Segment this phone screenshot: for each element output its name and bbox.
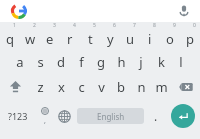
button[interactable]: 3 xyxy=(40,23,60,49)
staticText: e xyxy=(46,30,54,48)
button[interactable]: 4 xyxy=(60,23,80,49)
button[interactable]: k xyxy=(151,49,171,74)
staticText: l xyxy=(179,53,183,71)
staticText: q xyxy=(6,30,14,48)
staticText: 4 xyxy=(73,22,76,29)
staticText: r xyxy=(67,30,73,48)
staticText: g xyxy=(97,53,105,71)
staticText: m xyxy=(155,78,168,96)
button[interactable]: n xyxy=(131,74,151,99)
staticText: x xyxy=(58,78,65,96)
staticText: 6 xyxy=(113,22,116,29)
staticText: w xyxy=(25,30,36,48)
button[interactable]: a xyxy=(9,49,30,74)
staticText: 1 xyxy=(13,22,16,29)
staticText: c xyxy=(78,78,85,96)
staticText: 8 xyxy=(153,22,156,29)
button[interactable]: g xyxy=(91,49,111,74)
staticText: p xyxy=(186,30,194,48)
staticText: 5 xyxy=(93,22,96,29)
button[interactable]: 1 xyxy=(0,23,20,49)
staticText: 7 xyxy=(133,22,136,29)
staticText: a xyxy=(16,53,24,71)
button[interactable]: Backspace xyxy=(171,74,200,99)
button[interactable]: 5 xyxy=(80,23,100,49)
button[interactable]: 6 xyxy=(100,23,120,49)
button[interactable]: Voice input xyxy=(175,2,193,20)
button[interactable]: d xyxy=(51,49,71,74)
staticText: y xyxy=(107,30,114,48)
staticText: z xyxy=(37,78,44,96)
button[interactable]: English xyxy=(77,108,144,124)
button[interactable]: v xyxy=(91,74,111,99)
button[interactable]: b xyxy=(111,74,131,99)
button[interactable]: . xyxy=(146,99,166,133)
button[interactable]: Change language xyxy=(53,99,75,133)
staticText: j xyxy=(139,53,143,71)
staticText: o xyxy=(166,30,174,48)
staticText: n xyxy=(137,78,146,96)
button[interactable]: 0 xyxy=(180,23,200,49)
button[interactable]: m xyxy=(151,74,171,99)
button[interactable]: ?123 xyxy=(0,99,36,133)
staticText: , xyxy=(44,116,46,126)
button[interactable]: Enter xyxy=(171,104,195,128)
staticText: u xyxy=(126,30,135,48)
staticText: English xyxy=(97,111,125,122)
staticText: f xyxy=(79,53,84,71)
staticText: s xyxy=(37,53,44,71)
staticText: b xyxy=(117,78,125,96)
button[interactable]: Shift xyxy=(0,74,30,99)
staticText: ?123 xyxy=(8,110,28,122)
button[interactable]: l xyxy=(171,49,191,74)
staticText: . xyxy=(154,108,158,124)
button[interactable]: Emoji xyxy=(36,99,53,133)
button[interactable]: s xyxy=(30,49,51,74)
button[interactable]: 8 xyxy=(140,23,160,49)
button[interactable]: h xyxy=(111,49,131,74)
button[interactable]: c xyxy=(71,74,91,99)
staticText: t xyxy=(88,30,93,48)
staticText: v xyxy=(98,78,105,96)
staticText: k xyxy=(158,53,165,71)
button[interactable]: Google search xyxy=(9,1,29,21)
staticText: 2 xyxy=(33,22,36,29)
staticText: 9 xyxy=(173,22,176,29)
staticText: 3 xyxy=(53,22,56,29)
button[interactable]: 2 xyxy=(20,23,40,49)
button[interactable]: 7 xyxy=(120,23,140,49)
button[interactable]: z xyxy=(30,74,51,99)
button[interactable]: 9 xyxy=(160,23,180,49)
button[interactable]: j xyxy=(131,49,151,74)
staticText: i xyxy=(148,30,152,48)
button[interactable]: f xyxy=(71,49,91,74)
staticText: d xyxy=(57,53,65,71)
staticText: h xyxy=(117,53,126,71)
staticText: 0 xyxy=(193,22,196,29)
button[interactable]: x xyxy=(51,74,71,99)
